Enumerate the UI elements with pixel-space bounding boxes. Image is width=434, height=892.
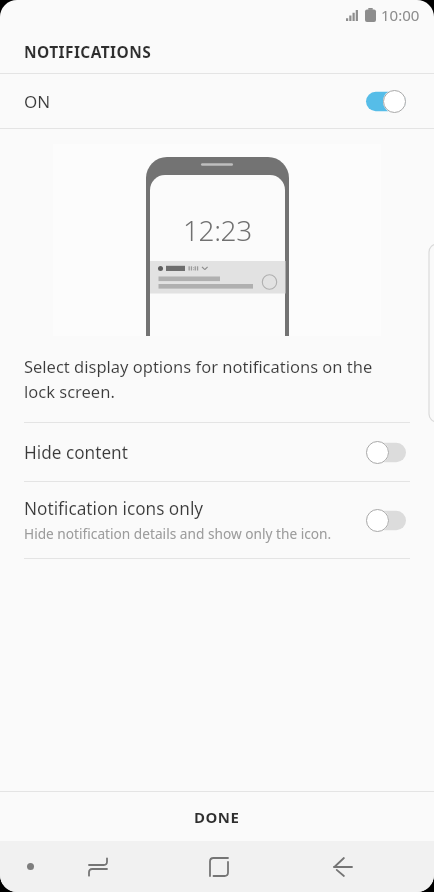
staticText: 12:23 [183,211,252,249]
button[interactable]: Back [312,841,373,892]
button[interactable]: Home [188,841,249,892]
staticText: Hide content [24,441,128,464]
staticText: NOTIFICATIONS [24,41,152,62]
other: Off [366,509,406,532]
staticText: Hide notification details and show only … [24,524,332,543]
staticText: DONE [194,807,240,827]
button[interactable]: Recents [67,841,128,892]
button[interactable]: DONE [0,792,434,841]
button[interactable]: ON [0,74,434,128]
staticText: Notification icons only [24,497,204,520]
other: Off [366,441,406,464]
staticText: ON [24,90,51,113]
button[interactable]: Notification icons only [0,482,434,558]
staticText: 10:00 [381,5,420,25]
other: On [366,90,406,113]
staticText: Select display options for notifications… [24,355,382,403]
button[interactable]: Hide content [0,423,434,481]
